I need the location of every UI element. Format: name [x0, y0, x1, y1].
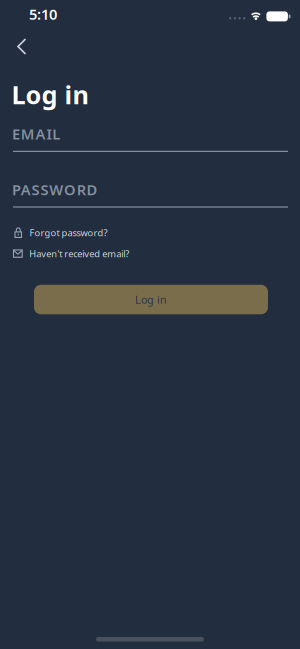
- button[interactable]: EMAIL: [12, 124, 288, 152]
- button[interactable]: Haven't received email?: [13, 247, 129, 260]
- staticText: PASSWORD: [12, 180, 98, 199]
- staticText: EMAIL: [12, 124, 60, 144]
- staticText: Log in: [135, 292, 167, 307]
- staticText: Log in: [11, 77, 88, 111]
- staticText: Forgot password?: [29, 226, 107, 239]
- button[interactable]: Forgot password?: [15, 226, 107, 239]
- button[interactable]: Log in: [34, 285, 268, 314]
- button[interactable]: Back: [18, 39, 25, 54]
- staticText: 5:10: [29, 4, 57, 24]
- staticText: Haven't received email?: [29, 247, 129, 260]
- button[interactable]: PASSWORD: [12, 180, 288, 207]
